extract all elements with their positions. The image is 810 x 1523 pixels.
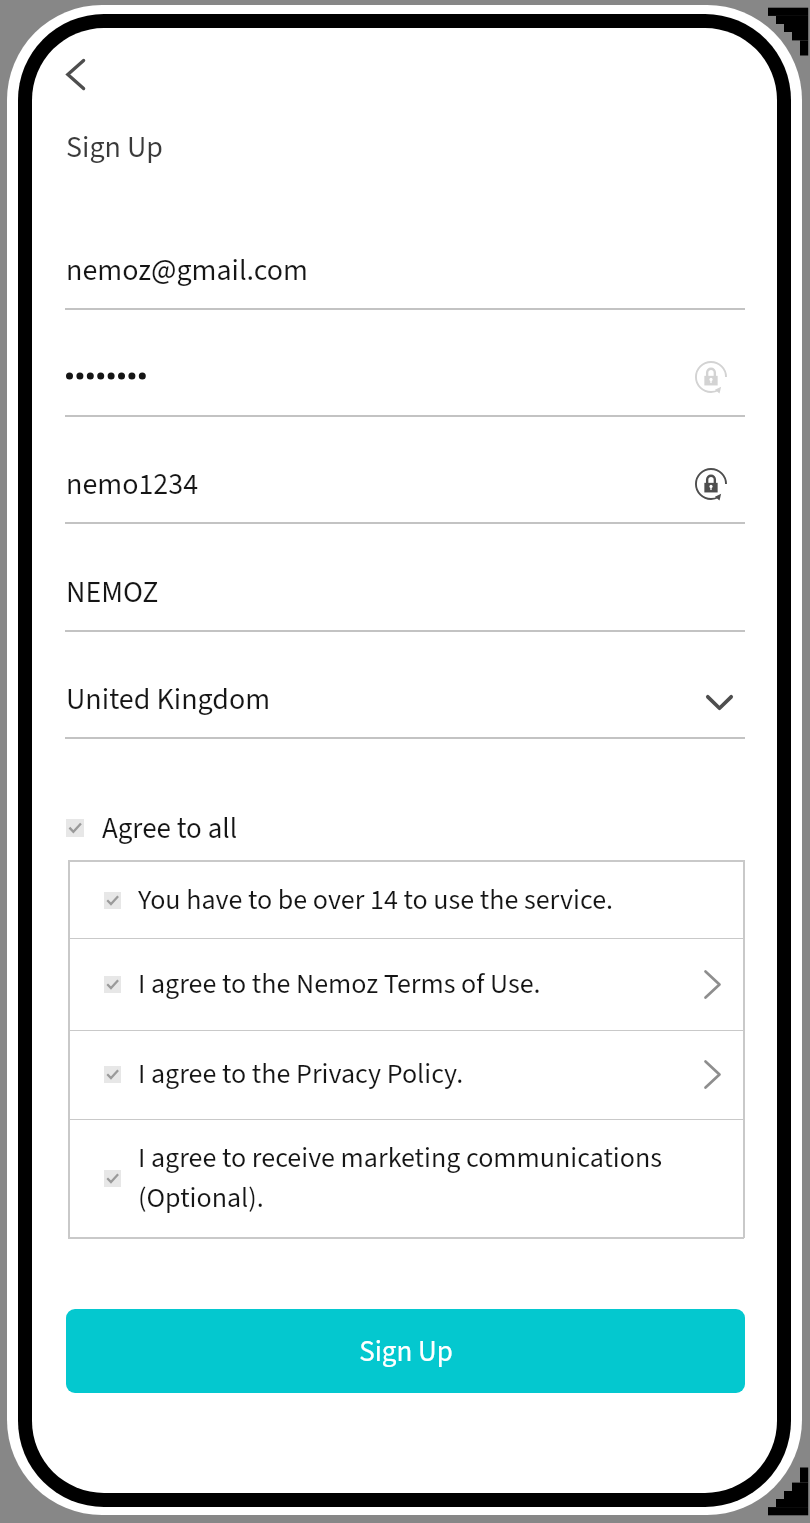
button[interactable]: Sign Up [66, 1309, 745, 1393]
staticText: You have to be over 14 to use the servic… [138, 880, 614, 920]
button[interactable]: I agree to receive marketing communicati… [70, 1119, 743, 1237]
staticText: United Kingdom [66, 678, 271, 721]
button[interactable]: You have to be over 14 to use the servic… [70, 861, 743, 939]
staticText: nemoz@gmail.com [66, 249, 308, 292]
staticText: I agree to receive marketing communicati… [138, 1138, 662, 1218]
button[interactable] [65, 452, 745, 522]
button[interactable] [65, 560, 745, 629]
staticText: Sign Up [359, 1331, 453, 1372]
staticText: I agree to the Privacy Policy. [138, 1054, 464, 1094]
button[interactable]: Show password [685, 458, 737, 510]
staticText: nemo1234 [66, 463, 199, 506]
button[interactable] [65, 345, 745, 414]
button[interactable]: Show password [685, 351, 737, 403]
button[interactable]: Select country [693, 676, 745, 728]
button[interactable]: Back [46, 45, 104, 103]
button[interactable] [65, 667, 745, 737]
staticText: Sign Up [66, 126, 163, 169]
button[interactable]: I agree to the Nemoz Terms of Use. [70, 938, 743, 1030]
button[interactable]: I agree to the Privacy Policy. [70, 1030, 743, 1118]
staticText: I agree to the Nemoz Terms of Use. [138, 964, 541, 1004]
button[interactable] [65, 250, 745, 308]
staticText: NEMOZ [66, 571, 159, 614]
button[interactable]: Agree to all [66, 806, 266, 850]
staticText: Agree to all [102, 808, 238, 849]
